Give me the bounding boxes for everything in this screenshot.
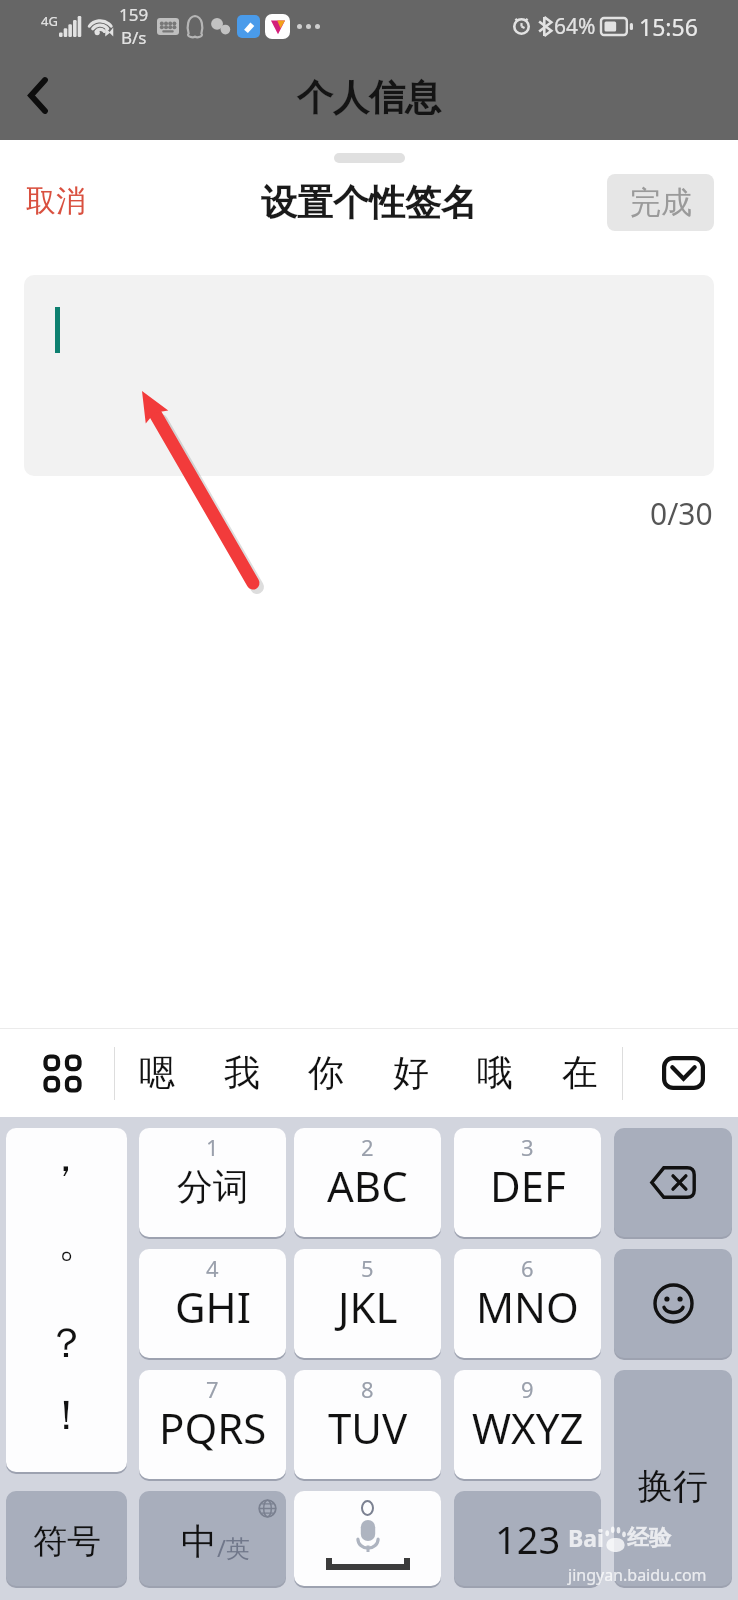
staticText: 你 xyxy=(308,1050,344,1095)
staticText: 哦 xyxy=(477,1050,513,1095)
staticText: GHI xyxy=(175,1278,251,1335)
staticText: Bai xyxy=(568,1522,604,1553)
staticText: 5 xyxy=(361,1253,374,1283)
staticText: ？ xyxy=(46,1318,87,1370)
button[interactable]: 哦 xyxy=(453,1028,537,1117)
button[interactable]: 好 xyxy=(369,1028,453,1117)
staticText: ABC xyxy=(327,1157,408,1214)
button[interactable]: 1 xyxy=(139,1128,286,1237)
staticText: 嗯 xyxy=(139,1050,175,1095)
button[interactable]: Emoji xyxy=(614,1249,732,1358)
button[interactable]: 你 xyxy=(284,1028,368,1117)
button[interactable]: 7 xyxy=(139,1370,286,1479)
staticText: MNO xyxy=(476,1278,579,1335)
staticText: DEF xyxy=(490,1157,566,1214)
button[interactable]: Space, voice input xyxy=(294,1491,441,1586)
staticText: 1 xyxy=(206,1132,219,1162)
staticText: 0/30 xyxy=(650,493,713,534)
button[interactable]: 完成 xyxy=(607,174,714,231)
button[interactable]: 9 xyxy=(454,1370,601,1479)
button[interactable]: 中 xyxy=(139,1491,286,1586)
button[interactable]: Backspace xyxy=(614,1128,732,1237)
button[interactable]: 在 xyxy=(538,1028,622,1117)
staticText: ！ xyxy=(46,1390,87,1442)
staticText: 6 xyxy=(521,1253,534,1283)
staticText: jingyan.baidu.com xyxy=(568,1564,707,1586)
staticText: 15:56 xyxy=(639,11,698,42)
staticText: 64% xyxy=(554,12,596,41)
button[interactable] xyxy=(24,275,714,476)
button[interactable]: Back xyxy=(0,58,76,133)
staticText: 。 xyxy=(58,1217,99,1269)
button[interactable]: Hide keyboard xyxy=(628,1038,738,1108)
staticText: 换行 xyxy=(638,1464,708,1508)
button[interactable]: 123 xyxy=(454,1491,601,1586)
staticText: /英 xyxy=(217,1531,250,1564)
staticText: JKL xyxy=(338,1278,398,1335)
staticText: ， xyxy=(45,1132,86,1184)
staticText: B/s xyxy=(121,26,147,49)
staticText: 4 xyxy=(206,1253,219,1283)
staticText: 符号 xyxy=(33,1520,101,1563)
button[interactable]: 6 xyxy=(454,1249,601,1358)
staticText: 中 xyxy=(181,1519,217,1564)
button[interactable]: 换行 xyxy=(614,1370,732,1586)
button[interactable]: 嗯 xyxy=(115,1028,199,1117)
staticText: 完成 xyxy=(630,183,692,222)
button[interactable]: 取消 xyxy=(26,182,86,220)
button[interactable]: 8 xyxy=(294,1370,441,1479)
button[interactable]: 4 xyxy=(139,1249,286,1358)
button[interactable]: Keyboard panels xyxy=(10,1038,114,1108)
staticText: 分词 xyxy=(177,1164,249,1209)
staticText: 4G xyxy=(41,12,58,30)
staticText: 3 xyxy=(521,1132,534,1162)
staticText: 经验 xyxy=(627,1524,671,1552)
staticText: 设置个性签名 xyxy=(261,180,477,225)
staticText: 个人信息 xyxy=(297,75,441,120)
button[interactable]: 3 xyxy=(454,1128,601,1237)
staticText: 9 xyxy=(521,1374,534,1404)
button[interactable]: ， xyxy=(6,1128,127,1472)
staticText: 取消 xyxy=(26,182,86,220)
staticText: PQRS xyxy=(159,1399,267,1456)
button[interactable]: 我 xyxy=(200,1028,284,1117)
button[interactable]: 2 xyxy=(294,1128,441,1237)
staticText: 2 xyxy=(361,1132,374,1162)
button[interactable]: 5 xyxy=(294,1249,441,1358)
staticText: WXYZ xyxy=(472,1399,584,1456)
staticText: 在 xyxy=(562,1050,598,1095)
staticText: 123 xyxy=(495,1513,561,1565)
staticText: 好 xyxy=(393,1050,429,1095)
staticText: 7 xyxy=(206,1374,219,1404)
staticText: 8 xyxy=(361,1374,374,1404)
button[interactable]: 符号 xyxy=(6,1491,127,1586)
staticText: TUV xyxy=(328,1399,408,1456)
staticText: 我 xyxy=(224,1050,260,1095)
staticText: 159 xyxy=(119,3,149,26)
